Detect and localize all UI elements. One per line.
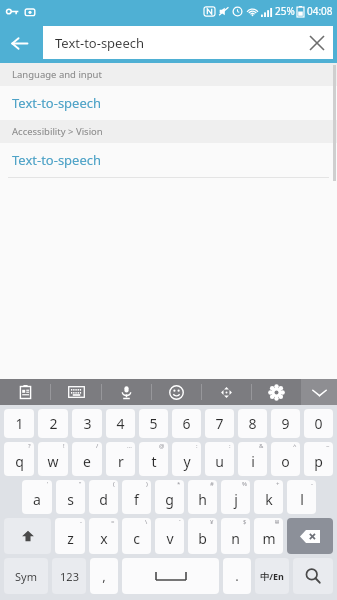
button[interactable]: 3	[72, 409, 102, 438]
staticText: ¥	[210, 518, 214, 526]
staticText: ,	[102, 567, 106, 585]
staticText: w	[47, 452, 59, 471]
button[interactable]: \	[122, 518, 151, 554]
button[interactable]: `	[155, 518, 184, 554]
button[interactable]: Emoji	[152, 379, 201, 405]
button[interactable]: Text-to-speech	[43, 26, 333, 59]
staticText: i	[251, 452, 255, 471]
staticText: t	[151, 452, 157, 471]
button[interactable]: .	[223, 558, 251, 594]
staticText: h	[198, 490, 207, 509]
button[interactable]: ₩	[254, 518, 283, 554]
button[interactable]: $	[221, 518, 250, 554]
staticText: 1	[15, 414, 24, 433]
staticText: m	[262, 529, 276, 548]
staticText: 中/En	[260, 570, 284, 582]
button[interactable]: +	[254, 480, 283, 514]
button[interactable]: 4	[106, 409, 135, 438]
button[interactable]: 中/En	[255, 558, 289, 594]
button[interactable]: 7	[205, 409, 234, 438]
staticText: Accessibility > Vision	[12, 125, 103, 138]
button[interactable]: Space	[122, 558, 219, 594]
staticText: :	[229, 442, 231, 450]
button[interactable]: 9	[271, 409, 300, 438]
staticText: 5	[149, 414, 158, 433]
staticText: $	[243, 518, 247, 526]
staticText: '	[47, 480, 49, 488]
button[interactable]: %	[221, 480, 250, 514]
button[interactable]: -	[287, 480, 316, 514]
button[interactable]: =	[89, 518, 118, 554]
button[interactable]: 5	[139, 409, 168, 438]
button[interactable]: ?	[4, 442, 34, 476]
button[interactable]: /	[72, 442, 102, 476]
button[interactable]: :	[205, 442, 234, 476]
staticText: ₩	[275, 518, 280, 526]
button[interactable]: Settings	[252, 379, 301, 405]
button[interactable]: @	[139, 442, 168, 476]
button[interactable]: Search	[293, 558, 333, 594]
button[interactable]: Keyboard layout	[51, 379, 101, 405]
staticText: Sym	[15, 569, 37, 584]
staticText: #	[210, 480, 214, 488]
staticText: u	[215, 452, 224, 471]
staticText: .	[235, 567, 239, 585]
button[interactable]: ,	[90, 558, 118, 594]
staticText: \	[145, 518, 148, 526]
staticText: &	[259, 442, 264, 450]
button[interactable]: (	[89, 480, 118, 514]
button[interactable]: -	[55, 518, 85, 554]
button[interactable]: Clear	[300, 26, 333, 59]
staticText: +	[276, 480, 280, 488]
button[interactable]: ¥	[188, 518, 217, 554]
button[interactable]: Shift	[4, 518, 51, 554]
staticText: y	[183, 452, 191, 471]
button[interactable]: Voice input	[102, 379, 151, 405]
button[interactable]: 6	[172, 409, 201, 438]
button[interactable]: 1	[4, 409, 34, 438]
staticText: 25%	[275, 4, 295, 18]
staticText: s	[67, 490, 74, 509]
staticText: 6	[182, 414, 191, 433]
staticText: `	[179, 518, 181, 526]
staticText: Language and input	[12, 68, 102, 81]
button[interactable]: 8	[238, 409, 267, 438]
staticText: d	[99, 490, 108, 509]
button[interactable]: *	[155, 480, 184, 514]
button[interactable]: #	[188, 480, 217, 514]
button[interactable]: Text-to-speech	[0, 143, 337, 177]
button[interactable]: Sym	[4, 558, 48, 594]
staticText: 9	[281, 414, 290, 433]
button[interactable]: Move cursor	[202, 379, 251, 405]
staticText: v	[166, 529, 174, 548]
button[interactable]: !	[38, 442, 68, 476]
staticText: =	[111, 518, 115, 526]
button[interactable]: Backspace	[287, 518, 333, 554]
button[interactable]: &	[238, 442, 267, 476]
staticText: n	[231, 529, 240, 548]
button[interactable]: :	[172, 442, 201, 476]
button[interactable]: '	[22, 480, 52, 514]
staticText: j	[234, 490, 238, 509]
button[interactable]: 2	[38, 409, 68, 438]
staticText: c	[133, 529, 140, 548]
button[interactable]: )	[122, 480, 151, 514]
button[interactable]: ...	[106, 442, 135, 476]
staticText: Text-to-speech	[55, 34, 300, 52]
staticText: Text-to-speech	[12, 151, 102, 169]
staticText: Text-to-speech	[12, 94, 102, 112]
button[interactable]: 123	[52, 558, 86, 594]
staticText: 4	[116, 414, 125, 433]
button[interactable]: Hide keyboard	[301, 379, 337, 405]
button[interactable]: Clipboard	[0, 379, 50, 405]
button[interactable]: Text-to-speech	[0, 86, 337, 120]
button[interactable]: ^	[271, 442, 300, 476]
staticText: g	[165, 490, 174, 509]
button[interactable]: Back	[0, 24, 38, 62]
button[interactable]: "	[56, 480, 85, 514]
staticText: /	[96, 442, 99, 450]
staticText: o	[281, 452, 290, 471]
staticText: ...	[127, 442, 132, 450]
button[interactable]: 0	[304, 409, 333, 438]
button[interactable]: ~	[304, 442, 333, 476]
